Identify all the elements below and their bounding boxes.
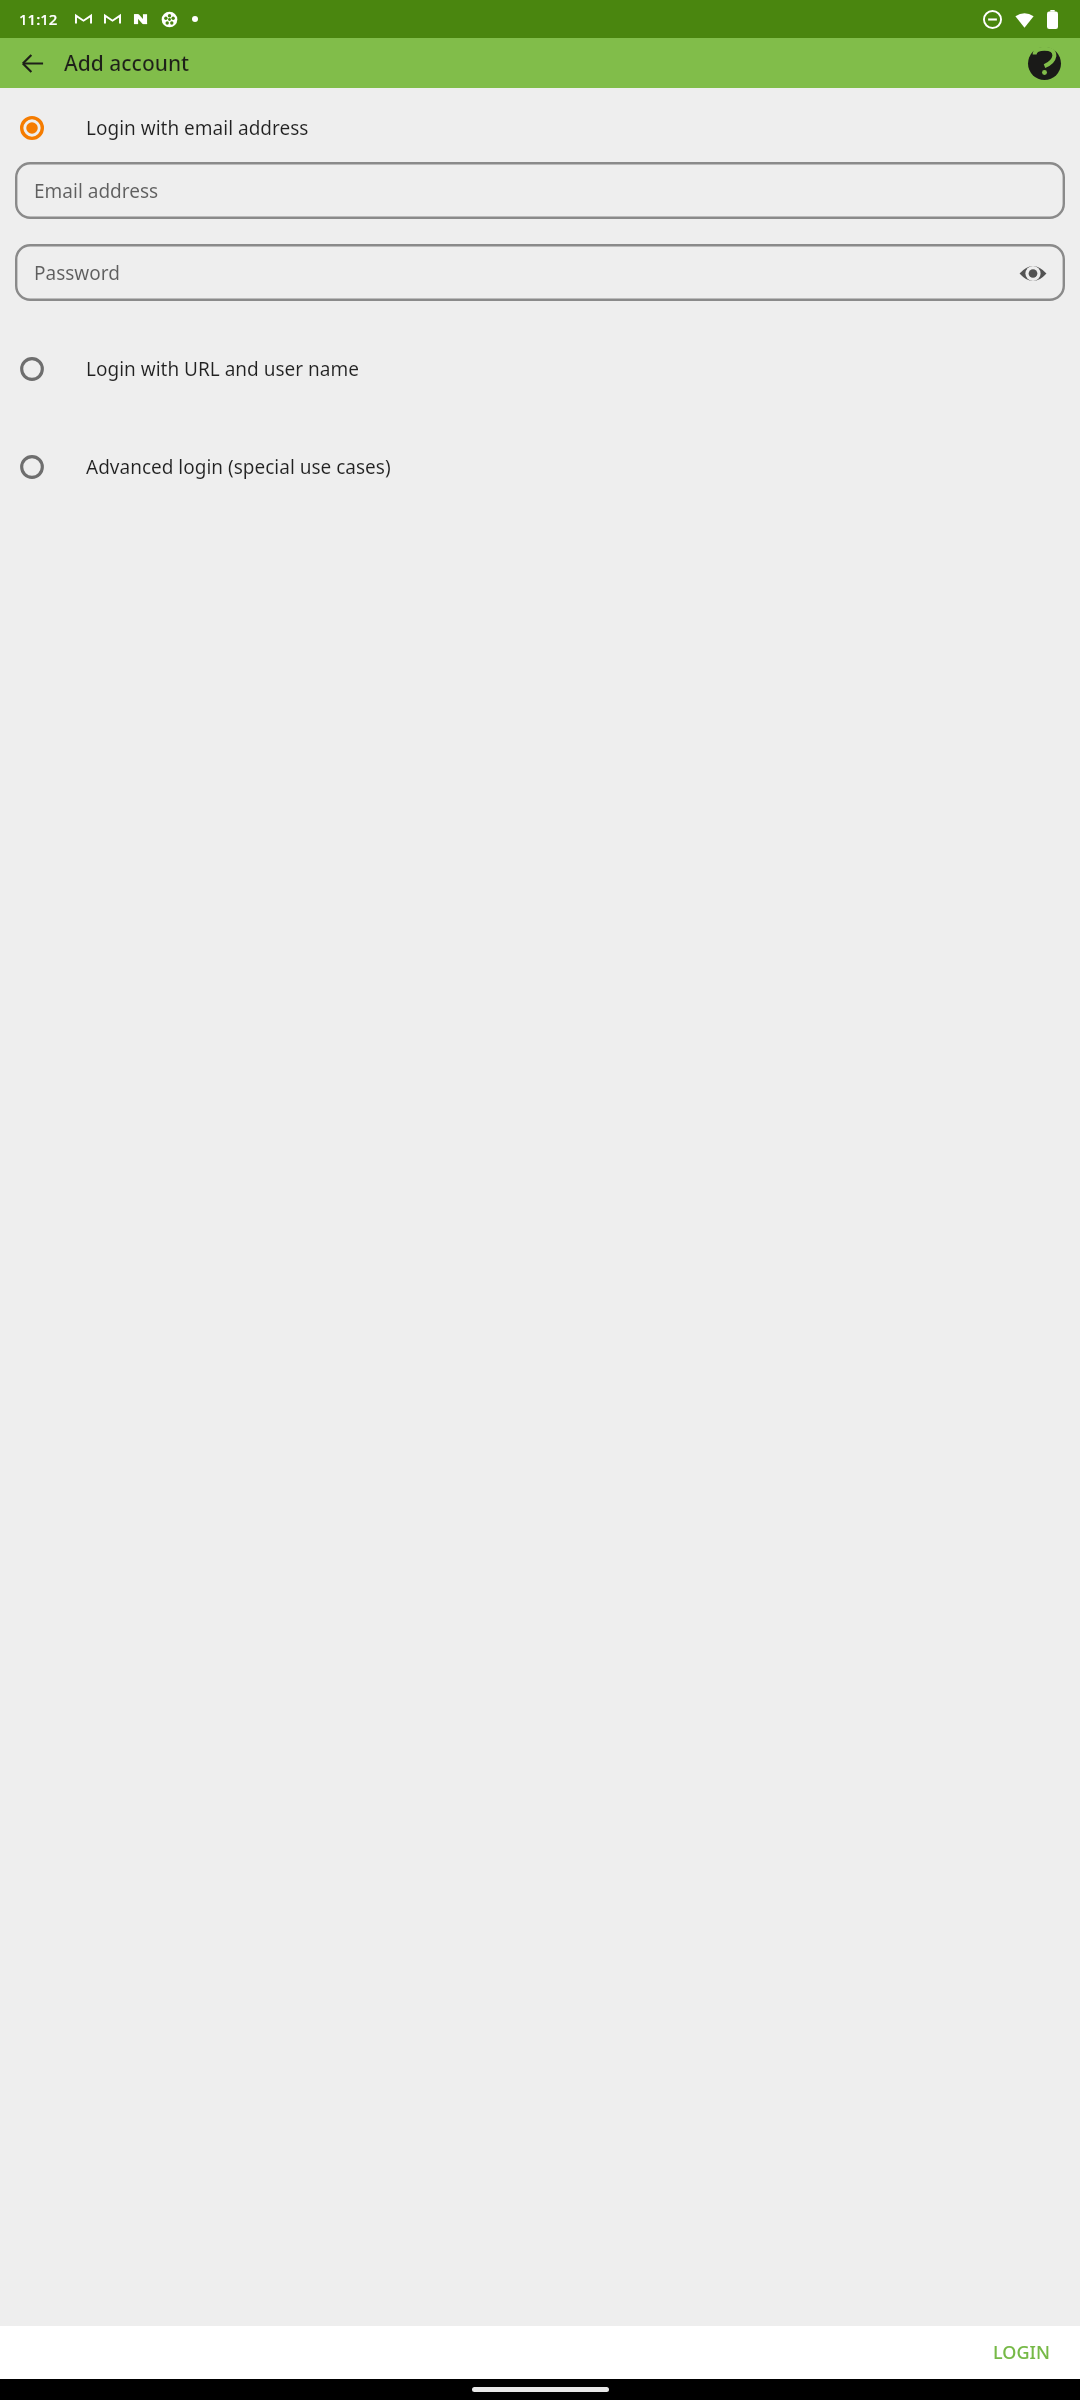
staticText: LOGIN: [993, 2340, 1050, 2365]
staticText: Advanced login (special use cases): [86, 454, 391, 480]
button[interactable]: Password: [15, 244, 1065, 301]
button[interactable]: Login with URL and user name: [0, 347, 1080, 391]
staticText: Login with URL and user name: [86, 356, 359, 382]
button[interactable]: Show password: [1011, 251, 1055, 295]
staticText: Email address: [34, 178, 159, 204]
button[interactable]: LOGIN: [981, 2332, 1062, 2373]
button[interactable]: Login with email address: [0, 106, 1080, 150]
button[interactable]: Email address: [15, 162, 1065, 219]
button[interactable]: Help: [1022, 41, 1066, 85]
staticText: Password: [34, 260, 120, 286]
button[interactable]: Advanced login (special use cases): [0, 445, 1080, 489]
staticText: 11:12: [19, 9, 58, 29]
staticText: Login with email address: [86, 115, 309, 141]
staticText: Add account: [64, 49, 190, 78]
button[interactable]: Back: [8, 39, 56, 87]
